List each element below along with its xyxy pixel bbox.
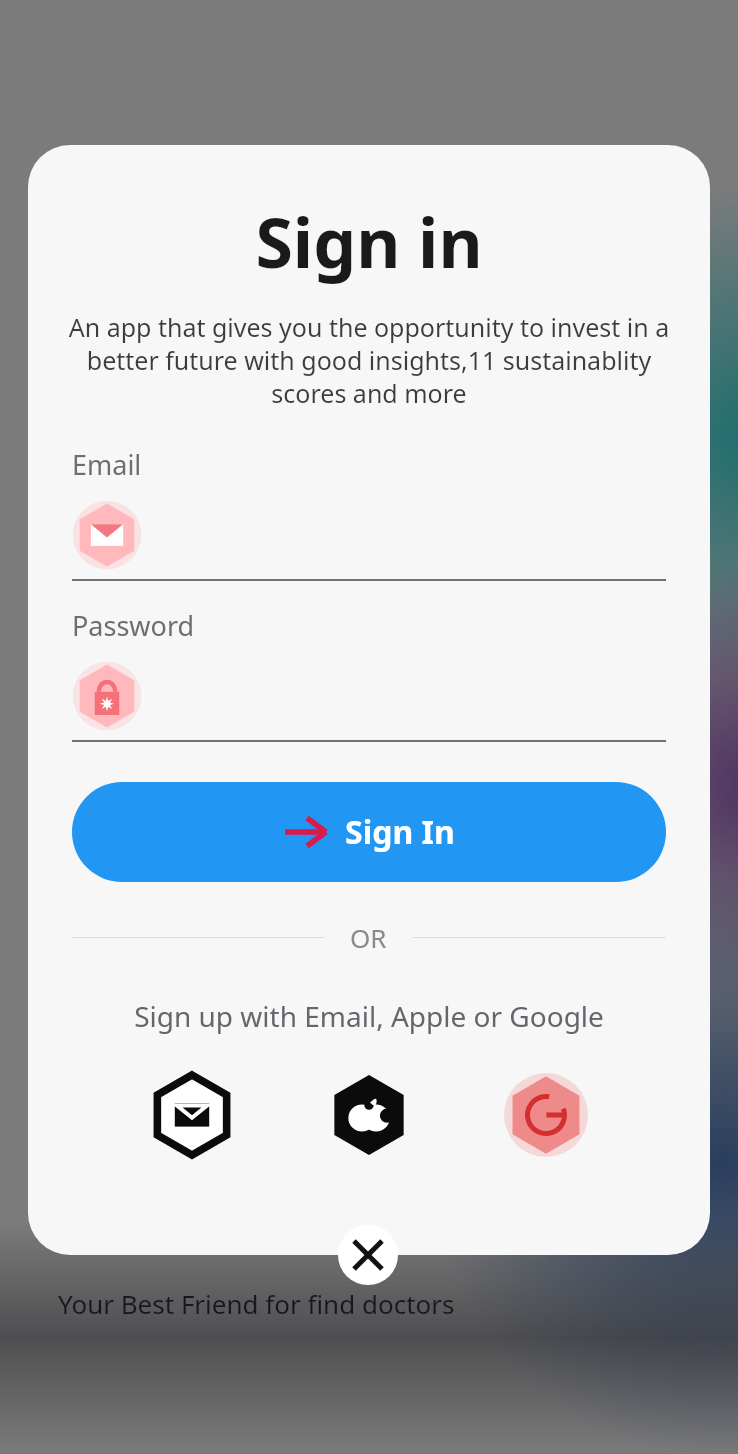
staticText: Your Best Friend for find doctors xyxy=(58,1286,455,1321)
staticText: An app that gives you the opportunity to… xyxy=(50,310,688,410)
button[interactable]: Password xyxy=(72,607,666,742)
staticText: OR xyxy=(350,920,387,955)
staticText: Sign up with Email, Apple or Google xyxy=(28,997,710,1035)
button[interactable]: Sign up with Email xyxy=(148,1071,236,1159)
button[interactable]: Sign up with Google xyxy=(502,1071,590,1159)
button[interactable]: Sign In xyxy=(72,782,666,882)
button[interactable]: Sign up with Apple xyxy=(325,1071,413,1159)
button[interactable]: Email xyxy=(72,446,666,581)
staticText: Email xyxy=(72,446,142,483)
button[interactable]: Close xyxy=(338,1225,398,1285)
staticText: Sign In xyxy=(345,810,455,854)
staticText: Sign in xyxy=(28,195,710,288)
staticText: Password xyxy=(72,607,195,644)
